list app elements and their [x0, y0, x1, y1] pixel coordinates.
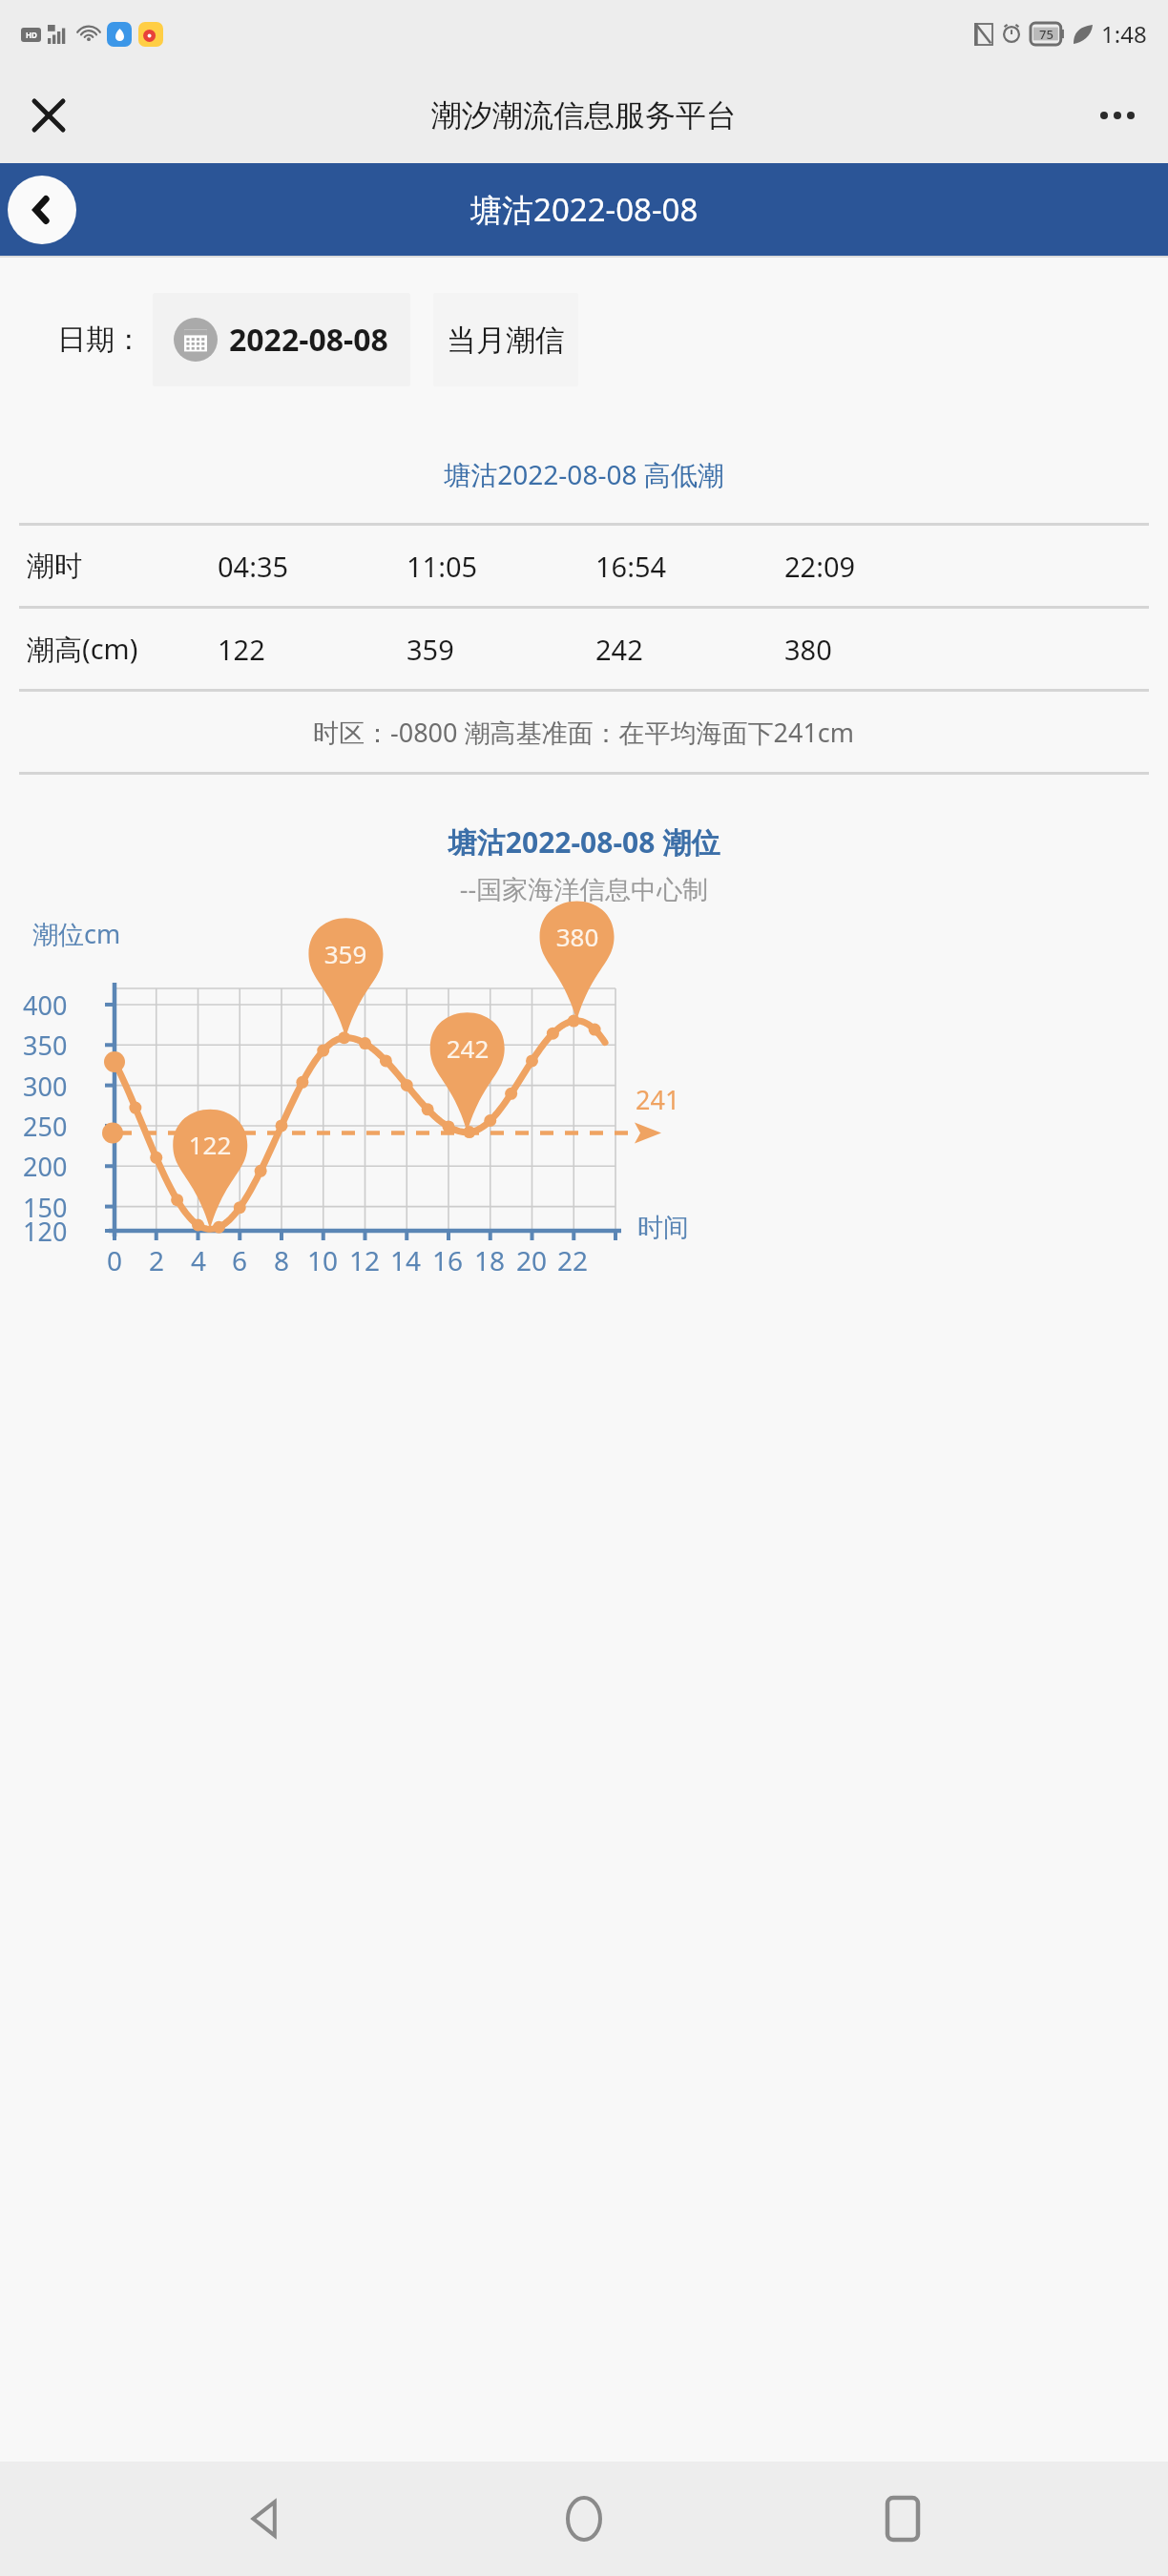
staticText: 12: [349, 1242, 381, 1278]
staticText: 塘沽2022-08-08 高低潮: [0, 456, 1168, 492]
staticText: 潮高(cm): [27, 630, 138, 668]
staticText: 242: [439, 1031, 496, 1065]
staticText: 120: [23, 1214, 68, 1249]
staticText: 潮汐潮流信息服务平台: [431, 96, 737, 135]
staticText: 0: [107, 1242, 123, 1278]
staticText: 150: [23, 1190, 68, 1225]
staticText: 日期：: [57, 322, 143, 358]
button[interactable]: Back: [214, 2466, 319, 2571]
staticText: 75: [1039, 26, 1053, 43]
staticText: 塘沽2022-08-08: [470, 188, 699, 231]
staticText: 241: [636, 1082, 680, 1117]
staticText: 8: [274, 1242, 290, 1278]
staticText: 10: [307, 1242, 339, 1278]
staticText: 时间: [637, 1212, 689, 1244]
staticText: 18: [474, 1242, 506, 1278]
staticText: 04:35: [218, 548, 289, 585]
button[interactable]: 当月潮信: [433, 293, 578, 386]
staticText: 16:54: [595, 548, 667, 585]
staticText: 380: [784, 631, 832, 668]
staticText: 潮时: [27, 549, 82, 584]
staticText: 380: [549, 920, 606, 953]
staticText: --国家海洋信息中心制: [0, 871, 1168, 906]
staticText: 14: [390, 1242, 422, 1278]
staticText: 塘沽2022-08-08 潮位: [0, 822, 1168, 862]
staticText: 4: [191, 1242, 207, 1278]
staticText: 1:48: [1101, 18, 1147, 50]
staticText: 359: [317, 937, 374, 970]
staticText: 242: [595, 631, 643, 668]
staticText: 6: [232, 1242, 248, 1278]
staticText: 22:09: [784, 548, 856, 585]
staticText: 时区：-0800 潮高基准面：在平均海面下241cm: [313, 715, 855, 750]
button[interactable]: Back: [8, 176, 76, 244]
staticText: 359: [407, 631, 454, 668]
button[interactable]: More options: [1088, 86, 1147, 145]
button[interactable]: 2022-08-08: [153, 293, 410, 386]
staticText: 当月潮信: [447, 322, 565, 359]
staticText: 2022-08-08: [229, 319, 388, 361]
staticText: 潮位cm: [32, 916, 121, 951]
button[interactable]: Recent apps: [850, 2466, 955, 2571]
staticText: 20: [516, 1242, 548, 1278]
staticText: 16: [432, 1242, 464, 1278]
staticText: 122: [218, 631, 265, 668]
staticText: 122: [181, 1128, 239, 1161]
staticText: 350: [23, 1028, 68, 1063]
staticText: 250: [23, 1109, 68, 1144]
staticText: HD: [26, 30, 37, 40]
staticText: 300: [23, 1069, 68, 1104]
staticText: 400: [23, 987, 68, 1023]
staticText: 22: [557, 1242, 589, 1278]
button[interactable]: Home: [532, 2466, 636, 2571]
button[interactable]: Close: [19, 86, 78, 145]
staticText: 11:05: [407, 548, 478, 585]
staticText: 2: [149, 1242, 165, 1278]
staticText: 200: [23, 1149, 68, 1184]
